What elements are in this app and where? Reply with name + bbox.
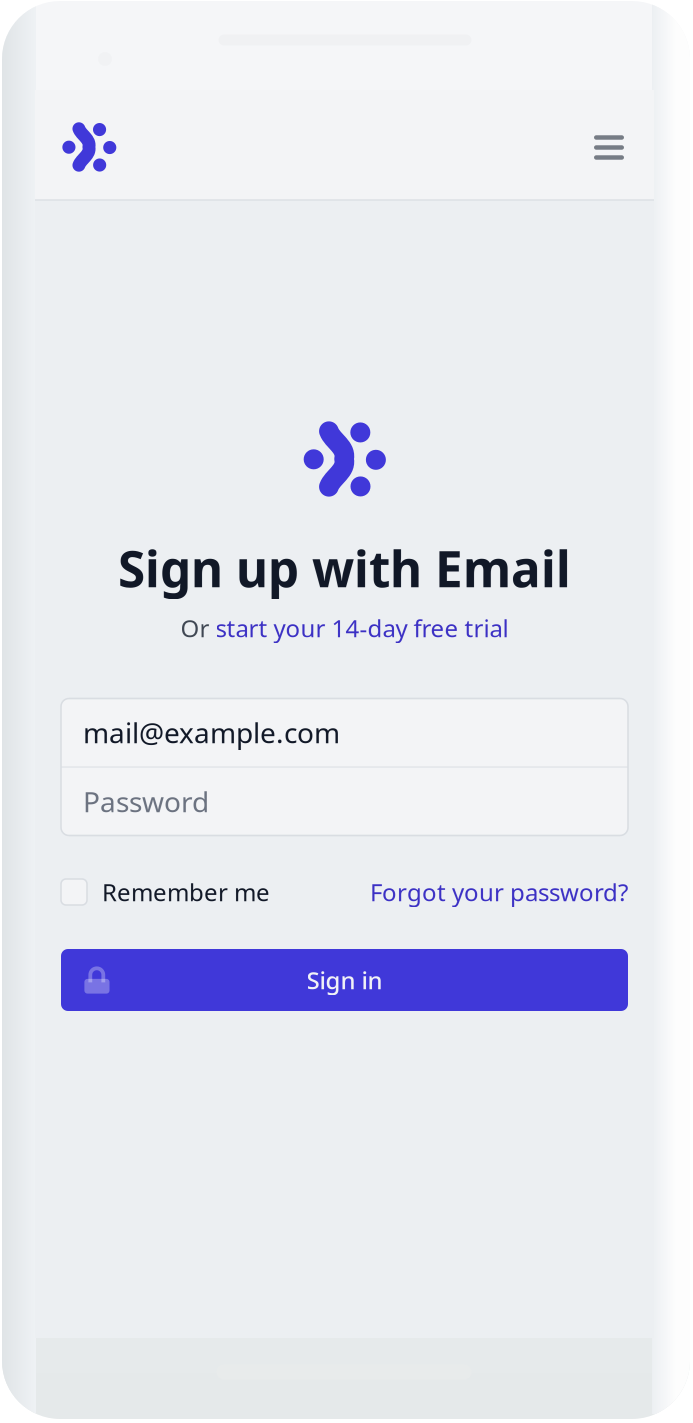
button[interactable]: start your 14-day free trial	[215, 612, 508, 644]
staticText: Remember me	[102, 876, 270, 908]
staticText: Forgot your password?	[370, 876, 628, 908]
button[interactable]: Remember me	[61, 872, 270, 912]
staticText: Or	[180, 612, 215, 644]
button[interactable]: Sign in	[61, 949, 628, 1011]
staticText: Sign up with Email	[118, 535, 571, 601]
staticText: Sign in	[306, 964, 382, 996]
staticText: mail@example.com	[83, 714, 340, 751]
button[interactable]: Home	[37, 95, 141, 199]
staticText: Password	[83, 783, 209, 820]
button[interactable]: Forgot your password?	[370, 872, 628, 912]
button[interactable]: Menu	[577, 115, 641, 179]
staticText: start your 14-day free trial	[215, 612, 508, 644]
